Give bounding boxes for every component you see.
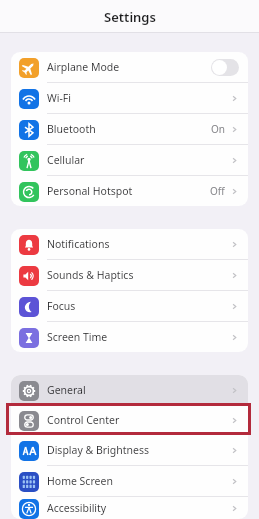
button[interactable]: General	[11, 375, 248, 405]
staticText: Screen Time	[47, 330, 108, 344]
button[interactable]: Screen Time	[11, 322, 248, 352]
staticText: On	[211, 122, 225, 136]
staticText: Control Center	[47, 413, 120, 427]
staticText: Sounds & Haptics	[47, 268, 134, 282]
button[interactable]: Control Center	[11, 405, 248, 435]
staticText: Cellular	[47, 153, 85, 167]
staticText: Bluetooth	[47, 122, 96, 136]
button[interactable]: Notifications	[11, 229, 248, 259]
button[interactable]: Home Screen	[11, 466, 248, 496]
staticText: Personal Hotspot	[47, 184, 133, 198]
staticText: Accessibility	[47, 501, 107, 515]
button[interactable]: Cellular	[11, 145, 248, 175]
staticText: Airplane Mode	[47, 60, 120, 74]
button[interactable]: Wi-Fi	[11, 83, 248, 113]
button[interactable]: Accessibility	[11, 497, 248, 519]
button[interactable]: Airplane Mode toggle, off	[211, 59, 239, 76]
button[interactable]: Personal Hotspot	[11, 176, 248, 206]
staticText: Wi-Fi	[47, 91, 72, 105]
staticText: Home Screen	[47, 474, 113, 488]
staticText: Focus	[47, 299, 76, 313]
button[interactable]: Sounds & Haptics	[11, 260, 248, 290]
button[interactable]: Bluetooth	[11, 114, 248, 144]
staticText: Settings	[104, 8, 156, 26]
button[interactable]: Focus	[11, 291, 248, 321]
button[interactable]: Airplane Mode	[11, 52, 248, 82]
staticText: Notifications	[47, 237, 110, 251]
staticText: Off	[210, 184, 225, 198]
button[interactable]: Display & Brightness	[11, 435, 248, 465]
staticText: Display & Brightness	[47, 443, 150, 457]
staticText: General	[47, 383, 86, 397]
